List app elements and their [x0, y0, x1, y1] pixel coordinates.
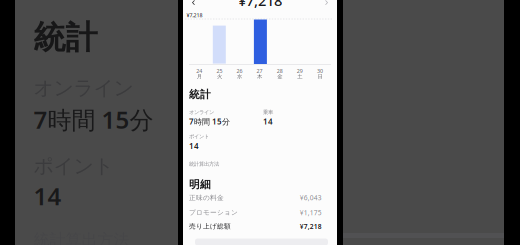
staticText: 24: [196, 67, 202, 75]
staticText: 29: [297, 67, 303, 75]
staticText: ¥1,175: [300, 208, 322, 217]
staticText: 30: [317, 67, 323, 75]
staticText: 25: [216, 67, 222, 75]
staticText: 金: [277, 73, 282, 80]
staticText: 7時間 15分: [33, 104, 153, 135]
staticText: 土: [297, 73, 302, 80]
staticText: ¥7,218: [238, 0, 282, 10]
staticText: ポイント: [189, 133, 209, 140]
staticText: 火: [217, 73, 222, 80]
staticText: ポイント: [33, 154, 113, 178]
staticText: 27: [257, 67, 263, 75]
staticText: 明細: [189, 178, 211, 191]
staticText: 14: [263, 116, 273, 127]
staticText: 28: [277, 67, 283, 75]
staticText: プロモーション: [189, 208, 238, 217]
button[interactable]: 統計算出方法: [189, 159, 249, 169]
staticText: 水: [237, 73, 242, 80]
button[interactable]: Next period: [320, 0, 332, 9]
staticText: ¥6,043: [300, 193, 322, 202]
staticText: 26: [236, 67, 242, 75]
staticText: オンライン: [33, 76, 133, 100]
staticText: 正味の料金: [189, 194, 224, 202]
staticText: 14: [33, 180, 61, 212]
staticText: 乗車: [263, 109, 273, 116]
staticText: 木: [257, 73, 262, 80]
staticText: 売り上げ総額: [189, 222, 231, 230]
staticText: ¥7,218: [300, 222, 322, 231]
staticText: オンライン: [189, 109, 214, 116]
staticText: 月: [197, 73, 202, 80]
staticText: 日: [317, 73, 322, 80]
staticText: ¥7,218: [186, 12, 202, 19]
staticText: 14: [189, 140, 199, 151]
staticText: 7時間 15分: [189, 116, 230, 127]
staticText: 統計: [189, 88, 211, 101]
button[interactable]: Previous period: [187, 0, 199, 9]
staticText: 統計: [33, 18, 97, 57]
staticText: 統計算出方法: [189, 161, 219, 167]
